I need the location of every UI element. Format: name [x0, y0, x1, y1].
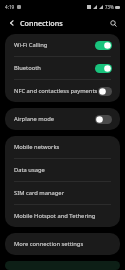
staticText: Bluetooth [14, 64, 41, 72]
button[interactable]: Data usage [5, 159, 120, 181]
button[interactable]: Bluetooth [5, 57, 120, 79]
staticText: More connection settings [14, 240, 84, 248]
staticText: Data usage [14, 166, 45, 174]
button[interactable]: Mobile networks [5, 136, 120, 158]
staticText: Connections [20, 18, 63, 28]
button[interactable]: NFC and contactless payments [5, 80, 120, 102]
button[interactable]: Airplane mode [5, 108, 120, 130]
button[interactable]: Wi-Fi Calling [5, 34, 120, 56]
staticText: 73% [105, 4, 114, 10]
button[interactable]: More connection settings [5, 233, 120, 255]
staticText: Wi-Fi Calling [14, 41, 48, 49]
button[interactable]: SIM card manager [5, 182, 120, 204]
staticText: NFC and contactless payments [14, 87, 98, 95]
staticText: SIM card manager [14, 189, 65, 197]
staticText: Airplane mode [14, 115, 55, 123]
staticText: 4:19 [5, 4, 15, 10]
staticText: Mobile networks [14, 143, 60, 151]
staticText: Mobile Hotspot and Tethering [14, 212, 96, 220]
button[interactable]: Search [107, 17, 119, 29]
button[interactable]: Back [6, 17, 17, 28]
button[interactable]: Mobile Hotspot and Tethering [5, 205, 120, 227]
